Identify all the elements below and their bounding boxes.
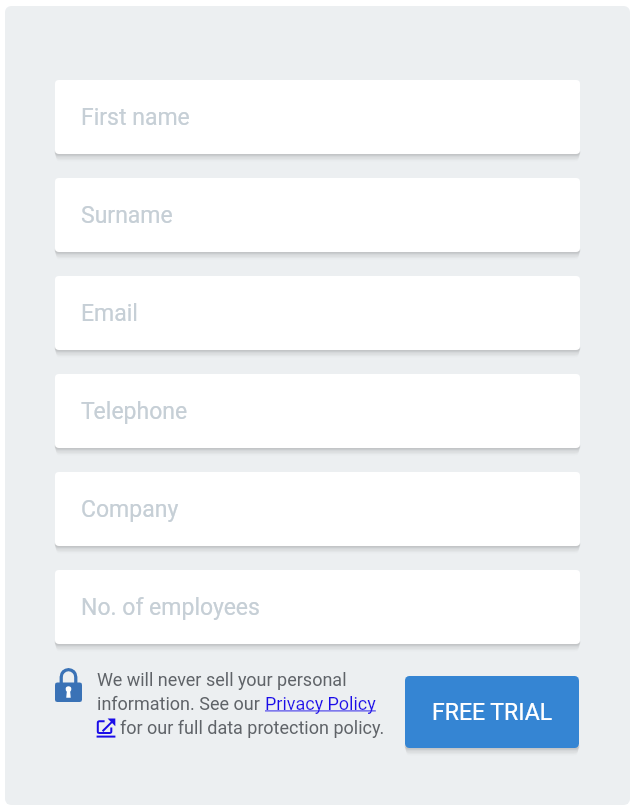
staticText: Surname xyxy=(81,202,173,229)
button[interactable]: No. of employees xyxy=(55,570,580,644)
staticText: First name xyxy=(81,104,190,131)
button[interactable]: FREE TRIAL xyxy=(405,676,579,748)
staticText: We will never sell your personal xyxy=(97,669,347,690)
staticText: Email xyxy=(81,300,138,327)
staticText: FREE TRIAL xyxy=(432,699,553,726)
button[interactable]: Email xyxy=(55,276,580,350)
staticText: Telephone xyxy=(81,398,188,425)
button[interactable]: Company xyxy=(55,472,580,546)
button[interactable]: Telephone xyxy=(55,374,580,448)
button[interactable]: Open external link xyxy=(96,717,120,739)
other: Secure xyxy=(55,668,82,702)
button[interactable]: Privacy Policy xyxy=(265,693,376,714)
button[interactable]: Surname xyxy=(55,178,580,252)
staticText: Company xyxy=(81,496,179,523)
staticText: Privacy Policy xyxy=(265,693,376,714)
staticText: information. See our xyxy=(97,693,265,714)
button[interactable]: First name xyxy=(55,80,580,154)
staticText: No. of employees xyxy=(81,594,260,621)
staticText: for our full data protection policy. xyxy=(120,717,385,738)
